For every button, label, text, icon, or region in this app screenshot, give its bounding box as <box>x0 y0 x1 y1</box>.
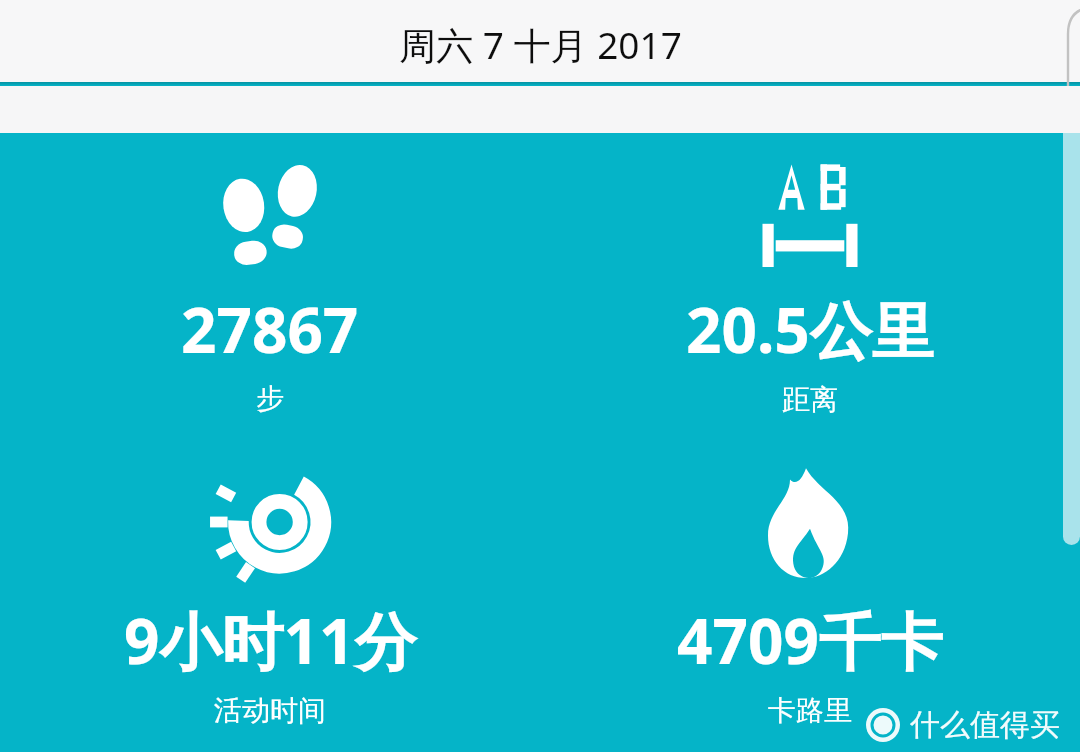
staticText: 9小时11分 <box>124 598 417 683</box>
staticText: 什么值得买 <box>910 706 1060 744</box>
staticText: 卡路里 <box>768 693 852 728</box>
staticText: 4709千卡 <box>677 598 943 683</box>
staticText: 周六 7 十月 2017 <box>399 19 682 70</box>
staticText: 活动时间 <box>214 693 326 728</box>
staticText: 步 <box>256 381 284 416</box>
button[interactable]: Calories <box>540 442 1080 752</box>
staticText: 27867 <box>181 287 359 371</box>
staticText: 20.5公里 <box>686 287 934 372</box>
button[interactable]: Distance <box>540 133 1080 442</box>
button[interactable]: Steps <box>0 133 540 442</box>
button[interactable]: Active time <box>0 442 540 752</box>
staticText: 距离 <box>782 382 838 417</box>
